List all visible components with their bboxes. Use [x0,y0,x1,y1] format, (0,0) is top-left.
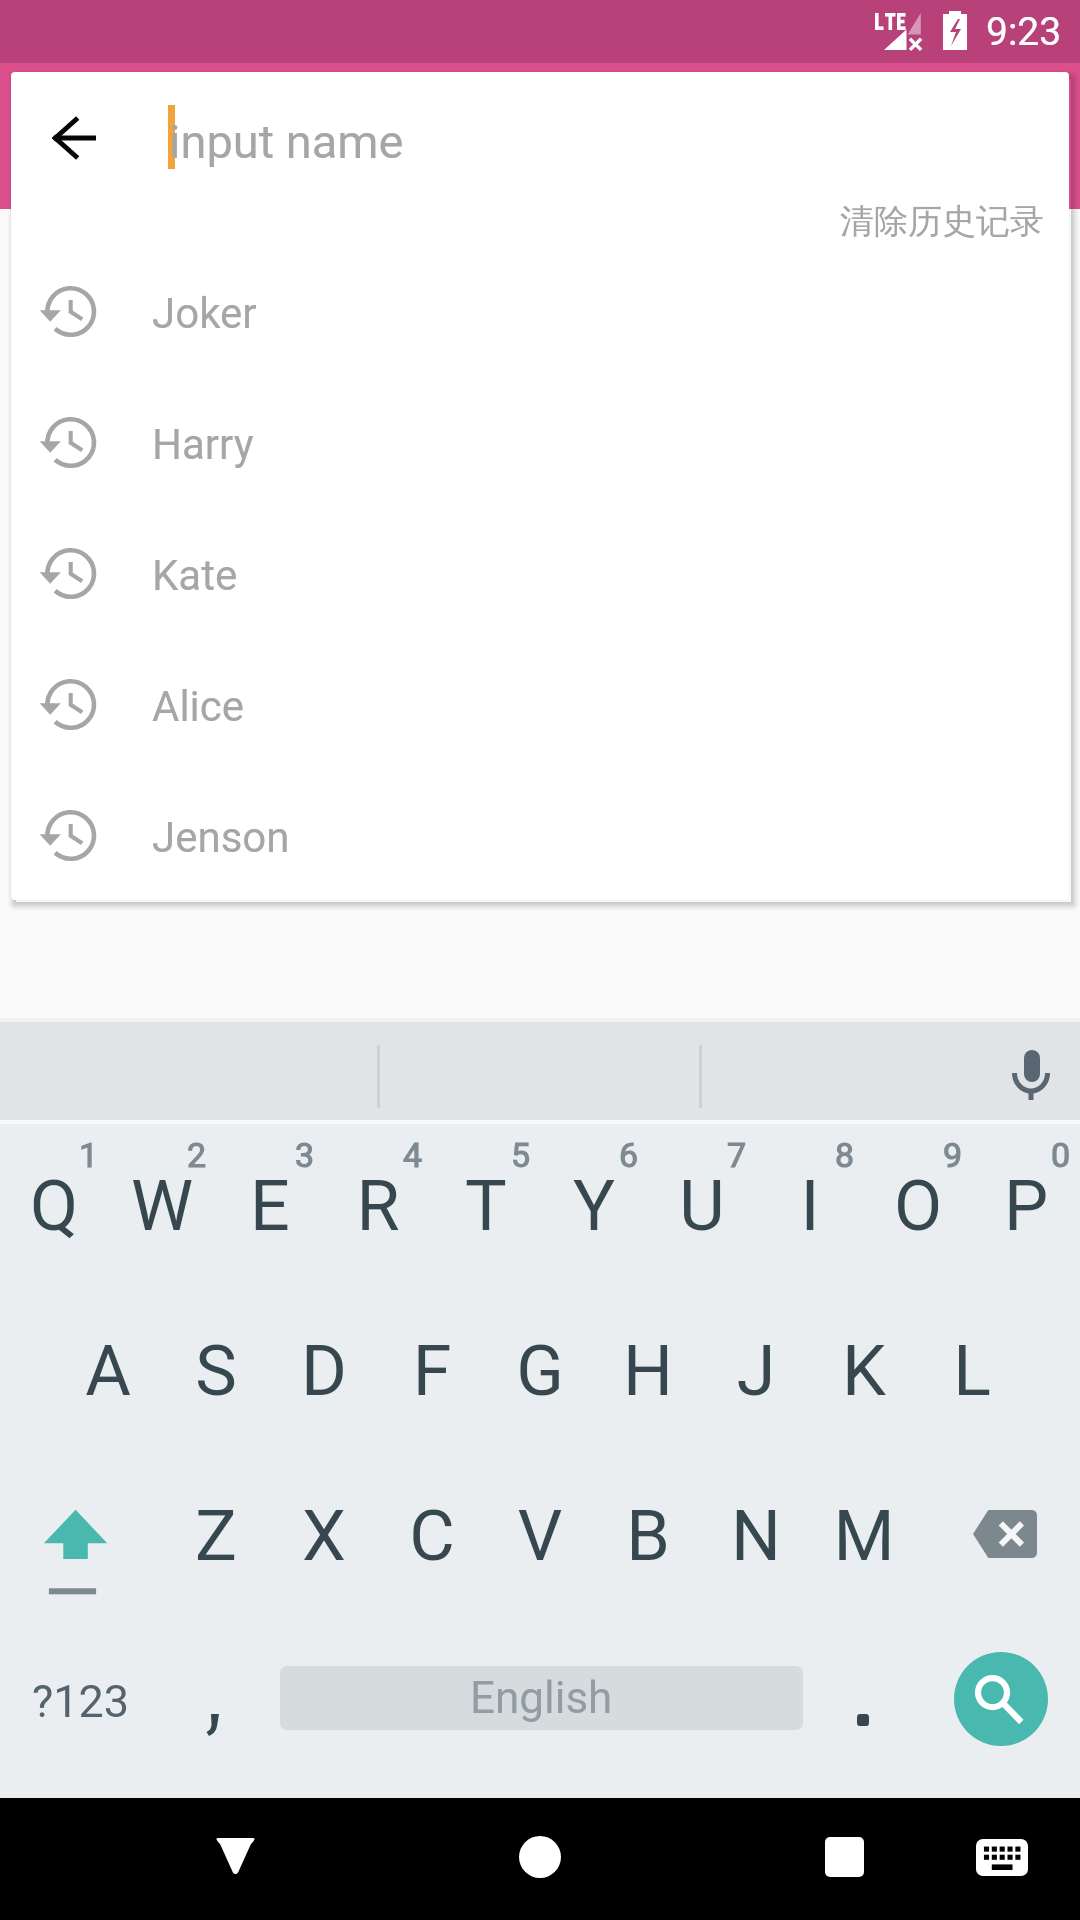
button[interactable]: Period [803,1619,921,1784]
staticText: 2 [187,1135,207,1175]
button[interactable]: Joker [11,247,1069,378]
button[interactable]: 8 [756,1124,864,1289]
staticText: M [810,1495,918,1577]
staticText: 3 [295,1135,315,1175]
button[interactable]: Shift [0,1454,162,1619]
staticText: X [270,1495,378,1577]
staticText: G [486,1330,594,1412]
button[interactable]: K [810,1289,918,1454]
staticText: Kate [152,551,238,600]
button[interactable]: input name [131,76,1051,200]
staticText: 清除历史记录 [840,200,1044,243]
button[interactable]: V [486,1454,594,1619]
staticText: Q [0,1165,108,1247]
button[interactable]: Back [23,89,119,185]
staticText: 9:23 [986,9,1062,55]
staticText: T [432,1165,540,1247]
staticText: R [324,1165,432,1247]
button[interactable]: Switch keyboard [952,1815,1052,1899]
staticText: P [972,1165,1080,1247]
button[interactable]: N [702,1454,810,1619]
button[interactable]: Search [954,1652,1048,1746]
button[interactable]: 0 [972,1124,1080,1289]
button[interactable]: 1 [0,1124,108,1289]
button[interactable]: L [918,1289,1026,1454]
staticText: E [216,1165,324,1247]
button[interactable]: 6 [540,1124,648,1289]
staticText: C [378,1495,486,1577]
button[interactable]: Backspace [918,1454,1080,1619]
staticText: D [270,1330,378,1412]
button[interactable]: 5 [432,1124,540,1289]
staticText: 9 [943,1135,963,1175]
staticText: B [594,1495,702,1577]
button[interactable]: Back [191,1815,281,1899]
staticText: K [810,1330,918,1412]
button[interactable]: F [378,1289,486,1454]
button[interactable]: Comma [162,1619,280,1784]
button[interactable]: 2 [108,1124,216,1289]
staticText: L [918,1330,1026,1412]
button[interactable]: 3 [216,1124,324,1289]
staticText: I [756,1165,864,1247]
button[interactable]: Z [162,1454,270,1619]
staticText: 7 [727,1135,747,1175]
button[interactable]: 9 [864,1124,972,1289]
button[interactable]: B [594,1454,702,1619]
staticText: Alice [152,682,245,731]
button[interactable]: G [486,1289,594,1454]
staticText: Harry [152,420,254,469]
staticText: 8 [835,1135,855,1175]
staticText: Jenson [152,813,290,862]
button[interactable]: M [810,1454,918,1619]
staticText: 1 [79,1135,99,1175]
staticText: 6 [619,1135,639,1175]
button[interactable]: ?123 [0,1619,162,1784]
button[interactable]: 4 [324,1124,432,1289]
staticText: 4 [403,1135,423,1175]
staticText: W [108,1165,216,1247]
button[interactable]: Harry [11,378,1069,509]
button[interactable]: J [702,1289,810,1454]
button[interactable]: Home [495,1815,585,1899]
staticText: J [702,1330,810,1412]
button[interactable]: S [162,1289,270,1454]
button[interactable]: D [270,1289,378,1454]
button[interactable]: Kate [11,509,1069,640]
staticText: F [378,1330,486,1412]
staticText: H [594,1330,702,1412]
staticText: Z [162,1495,270,1577]
staticText: English [470,1672,613,1724]
staticText: Y [540,1165,648,1247]
staticText: V [486,1495,594,1577]
staticText: ?123 [32,1675,130,1728]
button[interactable]: A [54,1289,162,1454]
staticText: A [54,1330,162,1412]
button[interactable]: C [378,1454,486,1619]
button[interactable]: 清除历史记录 [801,184,1069,258]
button[interactable]: Alice [11,640,1069,771]
staticText: S [162,1330,270,1412]
staticText: input name [169,114,404,169]
button[interactable]: 7 [648,1124,756,1289]
staticText: O [864,1165,972,1247]
staticText: 5 [511,1135,531,1175]
staticText: U [648,1165,756,1247]
button[interactable]: Jenson [11,771,1069,900]
button[interactable]: Recents [800,1815,890,1899]
staticText: Joker [152,289,257,338]
button[interactable]: English [280,1666,803,1730]
button[interactable]: Voice input [992,1030,1072,1110]
button[interactable]: H [594,1289,702,1454]
staticText: 0 [1051,1135,1071,1175]
button[interactable]: X [270,1454,378,1619]
staticText: N [702,1495,810,1577]
